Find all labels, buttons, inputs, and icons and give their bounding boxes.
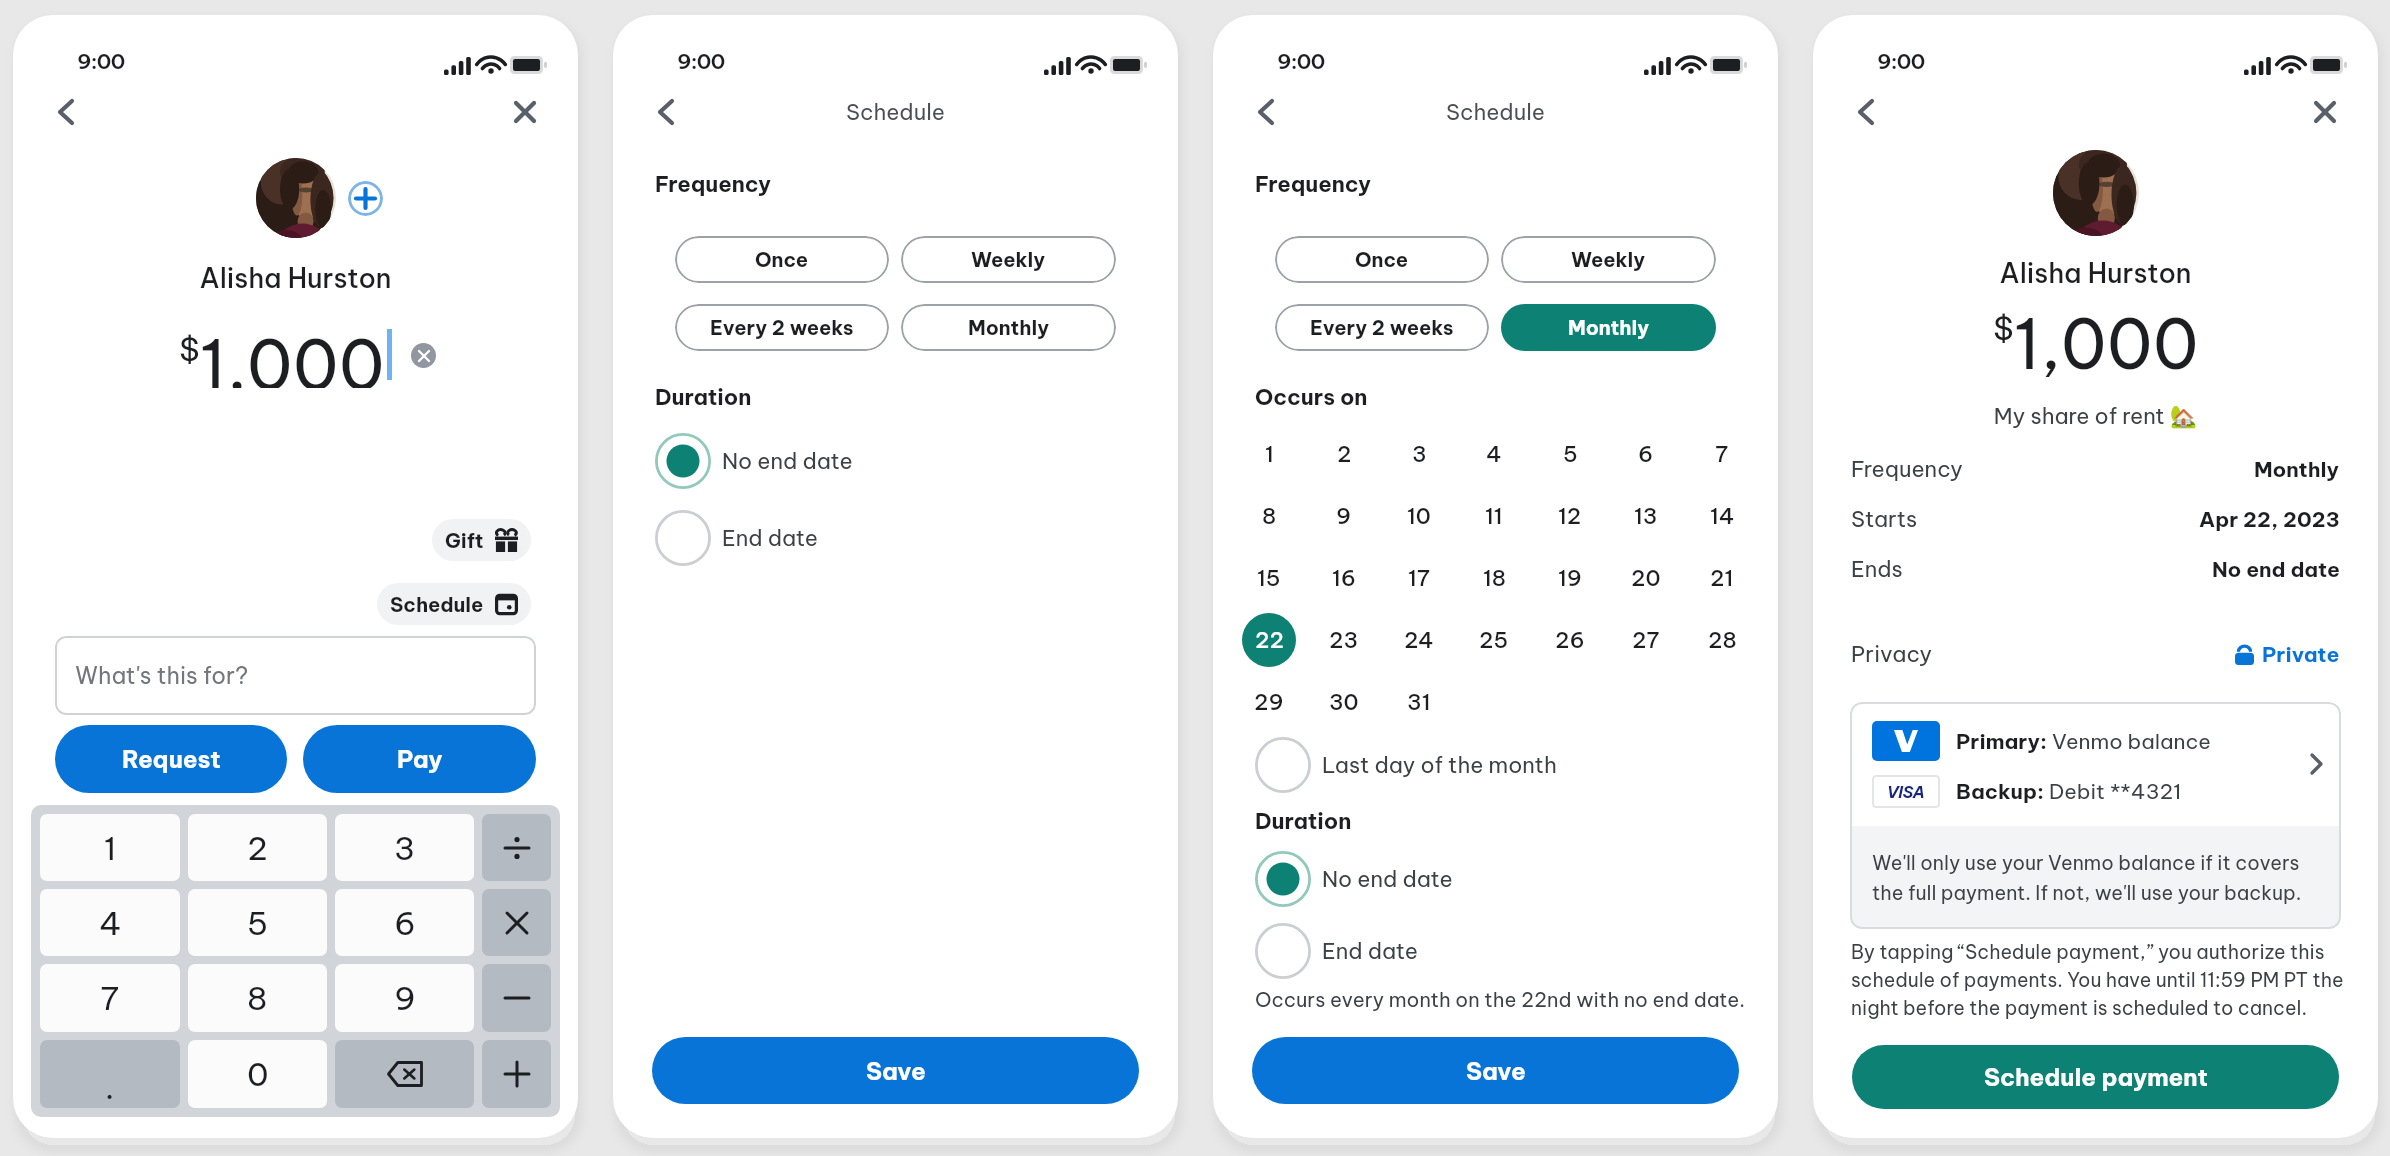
button[interactable]: Close <box>503 90 547 134</box>
button[interactable]: Back <box>44 90 88 134</box>
staticText: 17 <box>1408 564 1430 592</box>
button[interactable]: 15 <box>1242 551 1296 605</box>
button[interactable]: End date <box>613 510 1178 566</box>
button[interactable]: Monthly <box>1501 304 1716 351</box>
button[interactable]: Once <box>675 236 889 283</box>
staticText: 13 <box>1634 502 1658 530</box>
button[interactable]: Schedule <box>377 583 531 625</box>
button[interactable]: No end date <box>1213 851 1778 907</box>
button[interactable]: Backspace <box>335 1040 474 1108</box>
button[interactable]: Privacy <box>1813 634 2378 674</box>
button[interactable]: 24 <box>1392 613 1446 667</box>
button[interactable]: Pay <box>303 725 536 793</box>
button[interactable] <box>482 889 551 956</box>
button[interactable]: 1 <box>1242 427 1296 481</box>
button[interactable]: Schedule payment <box>1852 1045 2339 1109</box>
button[interactable]: 7 <box>40 964 180 1032</box>
button[interactable]: 9 <box>1317 489 1371 543</box>
button[interactable]: 13 <box>1619 489 1673 543</box>
button[interactable]: End date <box>1213 923 1778 979</box>
staticText: 8 <box>1262 502 1277 530</box>
button[interactable]: 17 <box>1392 551 1446 605</box>
button[interactable]: Monthly <box>901 304 1116 351</box>
button[interactable]: 6 <box>1619 427 1673 481</box>
button[interactable]: 26 <box>1543 613 1597 667</box>
button[interactable]: Close <box>2303 90 2347 134</box>
button[interactable] <box>482 814 551 881</box>
button[interactable]: 31 <box>1392 675 1446 729</box>
button[interactable]: 8 <box>188 964 327 1032</box>
button[interactable]: 6 <box>335 889 474 956</box>
staticText: Gift <box>445 528 484 553</box>
button[interactable]: Request <box>55 725 287 793</box>
staticText: Private <box>2262 641 2340 668</box>
button[interactable]: 30 <box>1317 675 1371 729</box>
staticText: 28 <box>1708 626 1737 654</box>
button[interactable]: 20 <box>1619 551 1673 605</box>
button[interactable]: 18 <box>1467 551 1521 605</box>
button[interactable]: 5 <box>1543 427 1597 481</box>
button[interactable]: 12 <box>1543 489 1597 543</box>
button[interactable]: 0 <box>188 1040 327 1108</box>
button[interactable]: 14 <box>1695 489 1749 543</box>
staticText: 26 <box>1555 626 1585 654</box>
button[interactable]: 8 <box>1242 489 1296 543</box>
staticText: Apr 22, 2023 <box>2199 506 2340 533</box>
button[interactable]: Save <box>1252 1037 1739 1104</box>
button[interactable]: 4 <box>40 889 180 956</box>
button[interactable]: 27 <box>1619 613 1673 667</box>
button[interactable]: 16 <box>1317 551 1371 605</box>
button[interactable]: No end date <box>613 433 1178 489</box>
button[interactable]: 9 <box>335 964 474 1032</box>
button[interactable]: 2 <box>188 814 327 881</box>
staticText: 5 <box>247 903 269 943</box>
staticText: Save <box>866 1056 926 1086</box>
button[interactable]: 3 <box>335 814 474 881</box>
button[interactable]: 1 <box>40 814 180 881</box>
staticText: Last day of the month <box>1322 751 1557 779</box>
button[interactable]: Every 2 weeks <box>675 304 889 351</box>
button[interactable]: Weekly <box>1501 236 1716 283</box>
staticText: 22 <box>1255 626 1284 654</box>
button[interactable]: 19 <box>1543 551 1597 605</box>
button[interactable]: . <box>40 1040 180 1108</box>
button[interactable]: 25 <box>1467 613 1521 667</box>
button[interactable]: Gift <box>432 519 531 561</box>
staticText: No end date <box>2212 556 2340 583</box>
button[interactable]: 29 <box>1242 675 1296 729</box>
button[interactable]: Last day of the month <box>1213 737 1778 793</box>
button[interactable] <box>482 964 551 1032</box>
button[interactable]: 22 <box>1242 613 1296 667</box>
staticText: 6 <box>1638 440 1654 468</box>
button[interactable]: 11 <box>1467 489 1521 543</box>
button[interactable]: Save <box>652 1037 1139 1104</box>
button[interactable]: 7 <box>1695 427 1749 481</box>
staticText: Occurs every month on the 22nd with no e… <box>1255 987 1745 1012</box>
staticText: 1 <box>104 828 117 868</box>
button[interactable]: 3 <box>1392 427 1446 481</box>
button[interactable]: Once <box>1275 236 1489 283</box>
staticText: Alisha Hurston <box>1813 256 2378 290</box>
button[interactable]: Clear amount <box>411 343 436 368</box>
button[interactable]: Back <box>1244 90 1288 134</box>
staticText: 1,000 <box>200 322 385 388</box>
button[interactable]: Every 2 weeks <box>1275 304 1489 351</box>
button[interactable]: 21 <box>1695 551 1749 605</box>
button[interactable]: Add person <box>348 181 383 216</box>
button[interactable]: 10 <box>1392 489 1446 543</box>
button[interactable]: 2 <box>1317 427 1371 481</box>
button[interactable]: 4 <box>1467 427 1521 481</box>
staticText: 9:00 <box>1277 48 1325 75</box>
staticText: Pay <box>397 744 443 774</box>
button[interactable]: What's this for? <box>55 636 536 715</box>
button[interactable]: Weekly <box>901 236 1116 283</box>
button[interactable]: 23 <box>1317 613 1371 667</box>
button[interactable] <box>482 1040 551 1108</box>
button[interactable]: 5 <box>188 889 327 956</box>
staticText: 2 <box>247 828 268 868</box>
staticText: 3 <box>394 828 416 868</box>
button[interactable]: Primary: <box>1850 702 2341 929</box>
button[interactable]: Back <box>644 90 688 134</box>
button[interactable]: 28 <box>1695 613 1749 667</box>
button[interactable]: Back <box>1844 90 1888 134</box>
